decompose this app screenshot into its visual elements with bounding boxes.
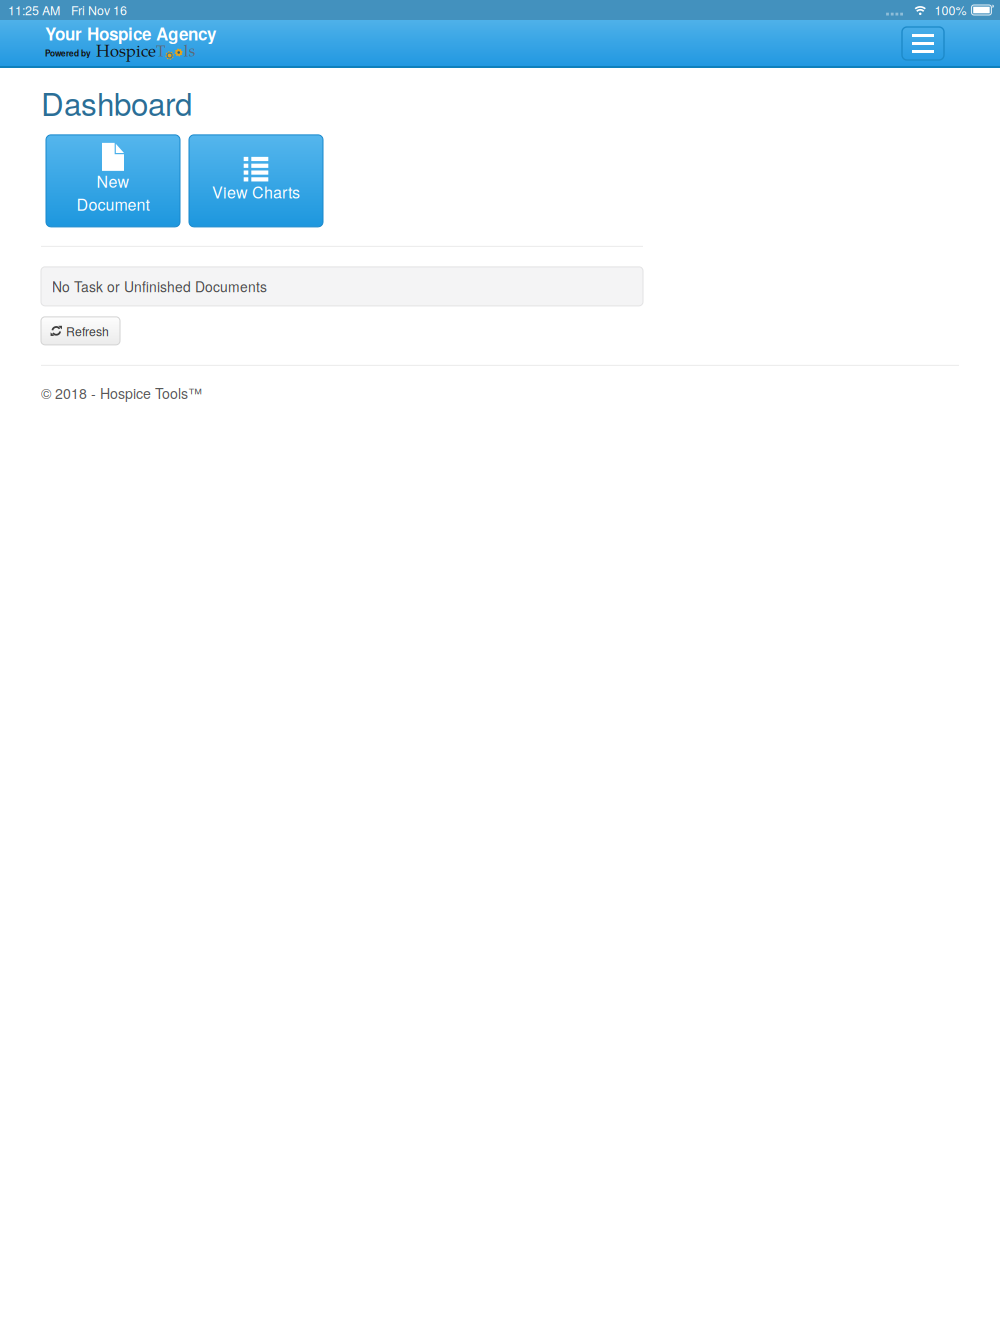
staticText: T	[156, 45, 165, 61]
button[interactable]: New	[46, 135, 180, 227]
staticText: View Charts	[212, 180, 300, 203]
staticText: © 2018 - Hospice Tools™	[41, 383, 202, 403]
staticText: No Task or Unfinished Documents	[52, 276, 267, 296]
button[interactable]: Refresh	[41, 317, 120, 345]
staticText: Powered by	[45, 47, 91, 59]
staticText: New	[96, 169, 129, 192]
staticText: Refresh	[66, 322, 109, 340]
staticText: 100%	[934, 1, 966, 19]
staticText: Fri Nov 16	[71, 1, 127, 19]
staticText: Document	[76, 192, 149, 215]
button[interactable]: View Charts	[189, 135, 323, 227]
staticText: Your Hospice Agency	[45, 21, 216, 46]
staticText: Hospice	[96, 45, 156, 61]
staticText: ls	[184, 45, 196, 61]
button[interactable]: Menu	[902, 27, 944, 60]
staticText: Dashboard	[41, 80, 192, 125]
staticText: 11:25 AM	[8, 1, 60, 19]
